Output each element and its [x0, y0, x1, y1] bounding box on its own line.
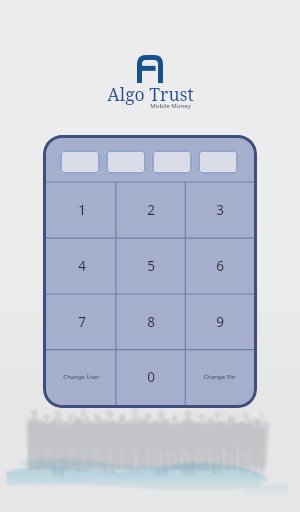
staticText: Algo Trust [107, 82, 194, 106]
button[interactable]: 2 [116, 182, 185, 238]
staticText: Change User [63, 373, 100, 381]
other: Algo Trust logo [137, 55, 163, 83]
button[interactable]: PIN digit 4 [198, 150, 238, 174]
button[interactable]: 4 [47, 238, 116, 294]
staticText: 9 [216, 313, 224, 331]
button[interactable]: 5 [116, 238, 185, 294]
staticText: 3 [216, 201, 224, 219]
staticText: 6 [216, 257, 224, 275]
button[interactable]: 7 [47, 294, 116, 350]
button[interactable]: PIN digit 3 [152, 150, 192, 174]
button[interactable]: PIN digit 1 [60, 150, 100, 174]
staticText: 4 [78, 257, 86, 275]
staticText: 8 [147, 313, 155, 331]
staticText: 1 [78, 201, 86, 219]
button[interactable]: 9 [185, 294, 254, 350]
button[interactable]: 6 [185, 238, 254, 294]
button[interactable]: 1 [47, 182, 116, 238]
button[interactable]: 3 [185, 182, 254, 238]
button[interactable]: 0 [116, 350, 185, 404]
button[interactable]: PIN digit 2 [106, 150, 146, 174]
staticText: 5 [147, 257, 155, 275]
staticText: 0 [147, 368, 155, 386]
staticText: 7 [78, 313, 86, 331]
button[interactable]: 8 [116, 294, 185, 350]
staticText: 2 [147, 201, 155, 219]
button[interactable]: Change Pin [185, 350, 254, 404]
staticText: Change Pin [203, 373, 236, 381]
button[interactable]: Change User [47, 350, 116, 404]
staticText: Mobile Money [150, 101, 191, 109]
